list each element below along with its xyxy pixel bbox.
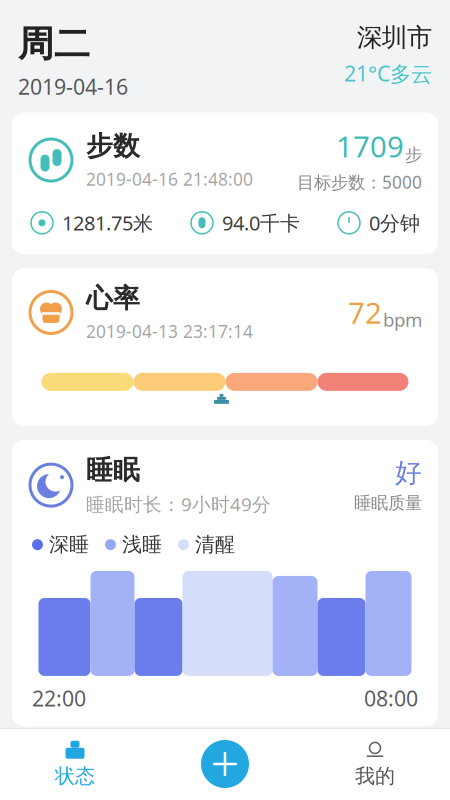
staticText: 睡眠时长：9小时49分 xyxy=(86,492,271,516)
staticText: 状态 xyxy=(55,764,95,788)
staticText: 2019-04-16 21:48:00 xyxy=(86,167,253,190)
staticText: 步 xyxy=(405,144,422,165)
staticText: 周二 xyxy=(18,22,90,66)
staticText: 浅睡 xyxy=(122,532,162,557)
staticText: 08:00 xyxy=(364,684,418,712)
staticText: 0分钟 xyxy=(369,209,420,236)
staticText: 22:00 xyxy=(32,684,86,712)
staticText: 1281.75米 xyxy=(62,209,153,236)
button[interactable]: 步数 xyxy=(12,112,438,254)
button[interactable]: 状态 xyxy=(0,730,150,798)
staticText: bpm xyxy=(383,307,422,332)
button[interactable]: 心率 xyxy=(12,268,438,426)
staticText: 21°C多云 xyxy=(344,59,432,87)
button[interactable]: 添加 xyxy=(150,734,300,794)
staticText: 深圳市 xyxy=(357,22,432,53)
staticText: 2019-04-13 23:17:14 xyxy=(86,320,253,343)
staticText: 睡眠 xyxy=(86,454,140,487)
staticText: 步数 xyxy=(86,130,140,162)
staticText: 清醒 xyxy=(195,532,235,557)
staticText: 94.0千卡 xyxy=(222,209,300,236)
staticText: 好 xyxy=(395,457,422,489)
staticText: 睡眠质量 xyxy=(354,492,422,514)
staticText: 目标步数：5000 xyxy=(297,170,422,193)
button[interactable]: 睡眠 xyxy=(12,440,438,726)
button[interactable]: 我的 xyxy=(300,730,450,798)
staticText: 1709 xyxy=(336,126,404,165)
staticText: 72 xyxy=(348,293,382,332)
staticText: 2019-04-16 xyxy=(18,72,128,100)
staticText: 深睡 xyxy=(49,532,89,557)
staticText: 心率 xyxy=(86,282,140,315)
staticText: 我的 xyxy=(355,764,395,788)
